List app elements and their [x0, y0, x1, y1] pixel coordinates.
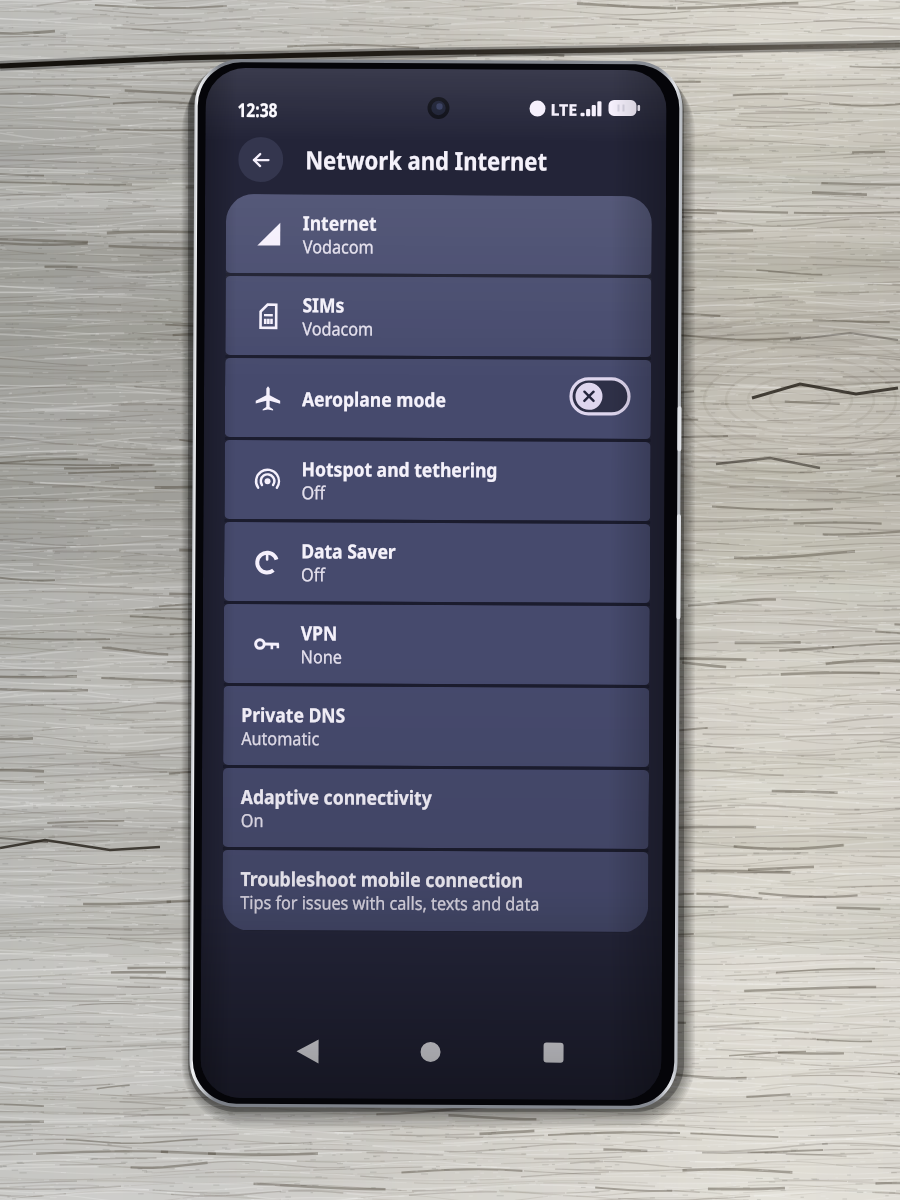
button[interactable]: Private DNS [223, 686, 649, 767]
staticText: Off [301, 562, 325, 587]
staticText: Off [301, 480, 326, 505]
staticText: Adaptive connectivity [241, 783, 433, 811]
staticText: VPN [301, 619, 338, 646]
staticText: Data Saver [301, 537, 397, 565]
staticText: None [301, 644, 342, 669]
staticText: Internet [303, 209, 377, 237]
staticText: Vodacom [303, 234, 374, 260]
button[interactable]: Internet [226, 194, 652, 275]
staticText: Troubleshoot mobile connection [240, 865, 523, 893]
staticText: On [241, 808, 264, 833]
button[interactable]: Adaptive connectivity [223, 768, 649, 849]
staticText: Tips for issues with calls, texts and da… [240, 890, 540, 917]
button[interactable]: Aeroplane mode [225, 358, 651, 439]
button[interactable]: Hotspot and tethering [224, 440, 651, 521]
staticText: SIMs [302, 291, 345, 318]
button[interactable]: SIMs [225, 276, 652, 357]
staticText: LTE [550, 99, 577, 121]
button[interactable]: Troubleshoot mobile connection [222, 850, 649, 932]
button[interactable]: Aeroplane mode off [571, 379, 629, 414]
staticText: Network and Internet [305, 142, 547, 178]
button[interactable]: VPN [223, 604, 650, 685]
button[interactable]: Data Saver [224, 522, 650, 603]
staticText: 12:38 [237, 97, 278, 123]
button[interactable]: Back [238, 137, 283, 182]
staticText: Aeroplane mode [302, 385, 447, 413]
staticText: Automatic [241, 726, 319, 751]
staticText: Vodacom [302, 316, 373, 342]
staticText: Hotspot and tethering [301, 455, 498, 483]
staticText: Private DNS [241, 701, 346, 728]
